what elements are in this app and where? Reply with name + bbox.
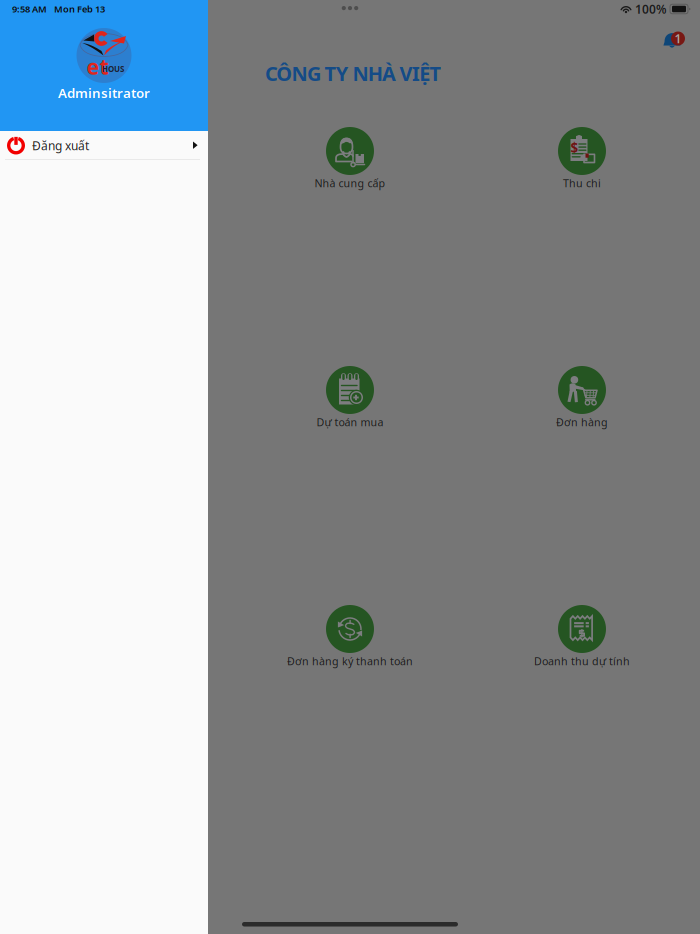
staticText: Dự toán mua	[316, 415, 383, 429]
button[interactable]: Dự toán mua	[255, 366, 445, 429]
staticText: 100%	[635, 1, 667, 17]
button[interactable]: Đơn hàng	[487, 366, 677, 429]
staticText: 9:58 AM	[12, 3, 47, 15]
staticText: Adminsitrator	[58, 84, 150, 102]
staticText: 1	[674, 30, 681, 46]
button[interactable]: Nhà cung cấp	[255, 127, 445, 190]
staticText: Đăng xuất	[32, 137, 89, 153]
staticText: CÔNG TY NHÀ VIỆT	[265, 60, 441, 87]
staticText: et	[86, 52, 108, 81]
staticText: Đơn hàng	[556, 415, 608, 429]
staticText: HOUS	[102, 64, 124, 74]
button[interactable]: Đơn hàng ký thanh toán	[255, 605, 445, 668]
staticText: Nhà cung cấp	[314, 176, 385, 190]
staticText: Doanh thu dự tính	[534, 654, 630, 668]
staticText: Mon Feb 13	[54, 3, 105, 15]
staticText: Đơn hàng ký thanh toán	[287, 654, 413, 668]
button[interactable]: $	[487, 127, 677, 190]
staticText: $	[570, 139, 578, 156]
button[interactable]: Notifications	[656, 25, 688, 55]
staticText: Thu chi	[563, 176, 601, 190]
button[interactable]: Doanh thu dự tính	[487, 605, 677, 668]
button[interactable]: Đăng xuất	[0, 131, 208, 160]
